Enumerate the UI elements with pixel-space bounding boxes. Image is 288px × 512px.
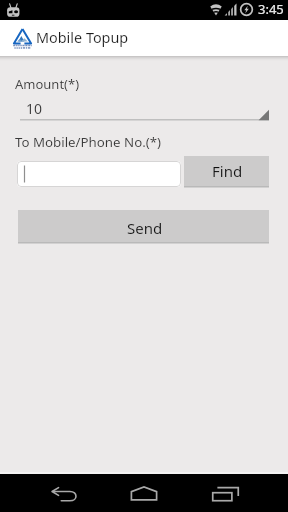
staticText: To Mobile/Phone No.(*) [15,133,162,151]
staticText: Amount(*) [15,75,80,93]
button[interactable]: Home [120,474,168,512]
button[interactable] [17,161,181,187]
button[interactable]: Recents [201,474,249,512]
staticText: Find [212,161,243,181]
button[interactable]: Find [184,156,269,188]
staticText: Send [127,218,163,238]
button[interactable]: 10 [19,98,269,121]
button[interactable]: Back [40,474,88,512]
button[interactable]: Send [18,210,269,244]
staticText: 10 [26,99,43,118]
staticText: Mobile Topup [36,28,129,48]
staticText: 3:45 [258,0,284,18]
